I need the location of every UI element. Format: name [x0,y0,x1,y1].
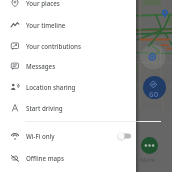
button[interactable]: Start navigation [143,76,166,99]
staticText: Location sharing [26,83,76,91]
staticText: Your places [26,0,60,7]
staticText: GO [149,90,159,98]
button[interactable]: Your contributions [0,37,136,55]
staticText: More [140,156,156,164]
button[interactable]: Wi-Fi only [0,127,136,145]
button[interactable]: Wi-Fi only toggle [117,131,131,141]
button[interactable]: Messages [0,57,136,75]
button[interactable]: Location sharing [0,78,136,96]
staticText: Wi-Fi only [26,132,55,140]
staticText: Your timeline [26,21,66,29]
button[interactable]: Your places [0,0,136,12]
button[interactable]: Start driving [0,99,136,117]
button[interactable]: Offline maps [0,149,136,167]
staticText: Offline maps [26,154,64,162]
staticText: Start driving [26,104,63,112]
button[interactable]: Your timeline [0,16,136,34]
button[interactable]: More [141,137,158,154]
staticText: Messages [26,62,56,70]
staticText: Your contributions [26,42,81,50]
